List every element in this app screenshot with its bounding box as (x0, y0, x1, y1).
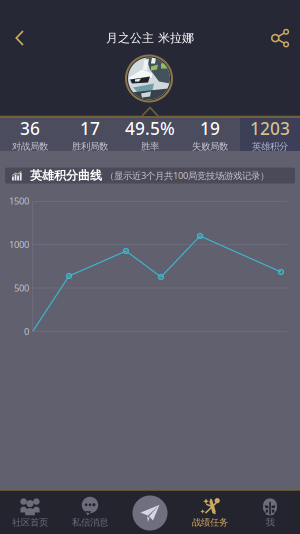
staticText: 17 (80, 117, 100, 140)
button[interactable]: 社区首页 (0, 491, 60, 534)
staticText: 500 (14, 282, 29, 294)
staticText: 英雄积分 (252, 141, 288, 152)
staticText: 0 (24, 325, 29, 338)
staticText: 1500 (9, 195, 29, 207)
staticText: 英雄积分曲线 (22, 168, 102, 183)
staticText: 我 (265, 517, 274, 528)
button[interactable]: 我 (240, 491, 300, 534)
staticText: 私信消息 (72, 517, 108, 528)
staticText: 1203 (250, 117, 290, 140)
button[interactable]: Back (0, 21, 40, 55)
button[interactable]: Compose (120, 491, 180, 534)
button[interactable]: 私信消息 (60, 491, 120, 534)
staticText: 对战局数 (12, 141, 48, 152)
staticText: 36 (20, 117, 40, 140)
staticText: 战绩任务 (192, 517, 228, 528)
staticText: 月之公主 米拉娜 (106, 31, 194, 45)
staticText: 社区首页 (12, 517, 48, 528)
staticText: 49.5% (125, 117, 175, 140)
staticText: 胜率 (141, 141, 159, 152)
staticText: （显示近3个月共100局竞技场游戏记录） (102, 169, 269, 182)
staticText: 失败局数 (192, 141, 228, 152)
staticText: 1000 (9, 238, 29, 251)
button[interactable]: 战绩任务 (180, 491, 240, 534)
button[interactable]: Share (260, 21, 300, 55)
staticText: 19 (200, 117, 220, 140)
staticText: 胜利局数 (72, 141, 108, 152)
